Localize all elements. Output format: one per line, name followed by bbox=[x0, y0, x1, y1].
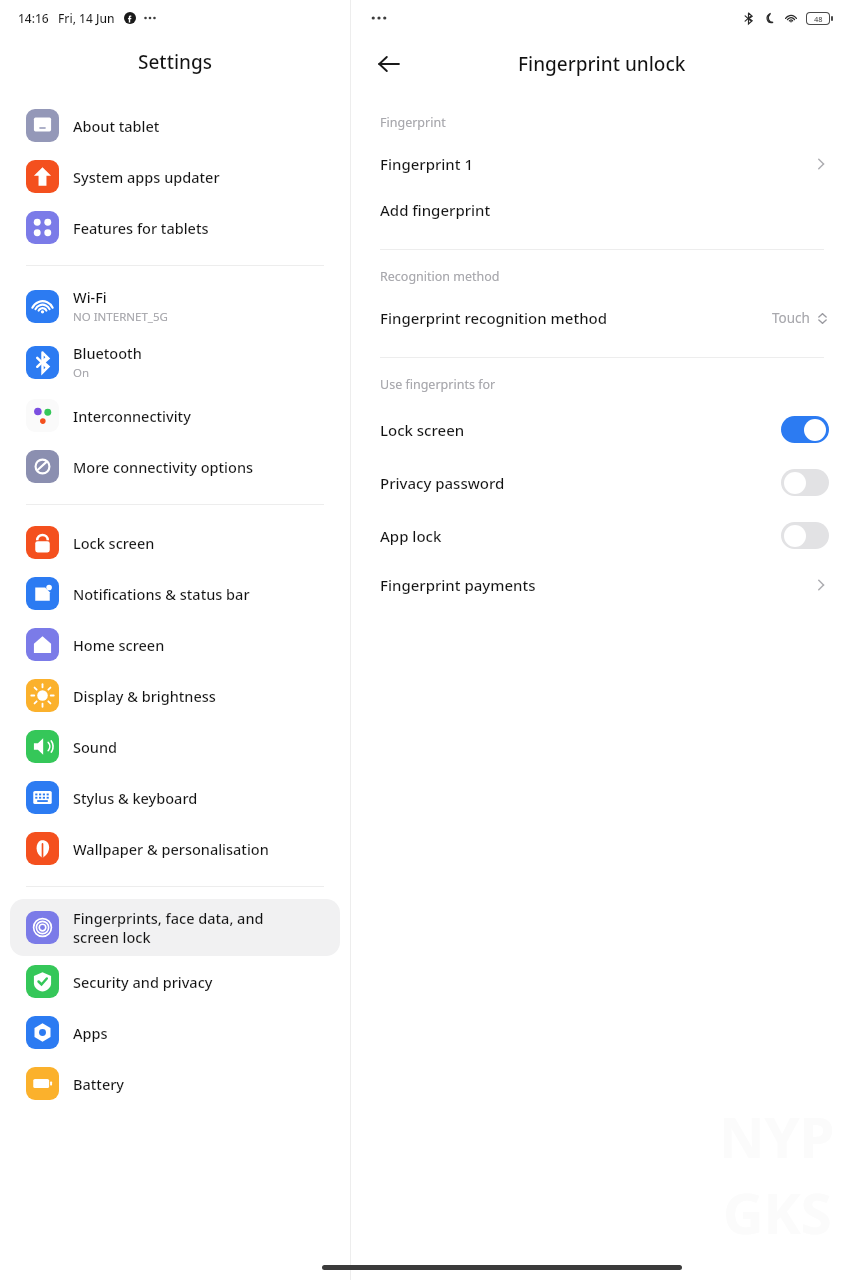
button[interactable]: Wallpaper & personalisation bbox=[0, 823, 350, 874]
staticText: Sound bbox=[73, 737, 118, 757]
button[interactable]: Notifications & status bar bbox=[0, 568, 350, 619]
button[interactable]: Security and privacy bbox=[0, 956, 350, 1007]
staticText: Interconnectivity bbox=[73, 406, 191, 426]
button[interactable]: Fingerprint 1 bbox=[351, 141, 853, 187]
button[interactable]: About tablet bbox=[0, 100, 350, 151]
staticText: 14:16 bbox=[18, 10, 49, 26]
staticText: NO INTERNET_5G bbox=[73, 309, 168, 325]
button[interactable]: More connectivity options bbox=[0, 441, 350, 492]
button[interactable]: Interconnectivity bbox=[0, 390, 350, 441]
staticText: Fingerprint 1 bbox=[380, 154, 473, 174]
button[interactable]: Display & brightness bbox=[0, 670, 350, 721]
staticText: Recognition method bbox=[380, 268, 500, 285]
button[interactable]: Home screen bbox=[0, 619, 350, 670]
button[interactable]: Apps bbox=[0, 1007, 350, 1058]
button[interactable]: On bbox=[781, 416, 829, 443]
staticText: Add fingerprint bbox=[380, 200, 491, 220]
staticText: Battery bbox=[73, 1074, 124, 1094]
staticText: 48 bbox=[814, 14, 823, 24]
staticText: Use fingerprints for bbox=[380, 376, 496, 393]
staticText: App lock bbox=[380, 526, 442, 546]
staticText: On bbox=[73, 365, 90, 381]
button[interactable]: Features for tablets bbox=[0, 202, 350, 253]
staticText: Display & brightness bbox=[73, 686, 216, 706]
staticText: Settings bbox=[138, 49, 212, 75]
button[interactable]: Battery bbox=[0, 1058, 350, 1109]
staticText: Wi-Fi bbox=[73, 287, 107, 307]
staticText: System apps updater bbox=[73, 167, 220, 187]
button[interactable]: Fingerprint recognition method bbox=[351, 295, 853, 341]
staticText: Fingerprint recognition method bbox=[380, 308, 608, 328]
button[interactable]: Stylus & keyboard bbox=[0, 772, 350, 823]
staticText: Bluetooth bbox=[73, 343, 142, 363]
staticText: Lock screen bbox=[73, 533, 155, 553]
staticText: Touch bbox=[772, 309, 810, 327]
button[interactable]: Lock screen bbox=[0, 517, 350, 568]
staticText: Fingerprint payments bbox=[380, 575, 536, 595]
staticText: Stylus & keyboard bbox=[73, 788, 198, 808]
button[interactable]: Lock screen bbox=[351, 403, 853, 456]
button[interactable]: Sound bbox=[0, 721, 350, 772]
staticText: Notifications & status bar bbox=[73, 584, 250, 604]
button[interactable]: Off bbox=[781, 469, 829, 496]
staticText: Security and privacy bbox=[73, 972, 213, 992]
button[interactable]: System apps updater bbox=[0, 151, 350, 202]
staticText: Home screen bbox=[73, 635, 165, 655]
staticText: Fri, 14 Jun bbox=[58, 10, 115, 26]
button[interactable]: Fingerprints, face data, and screen lock bbox=[10, 899, 340, 956]
button[interactable]: App lock bbox=[351, 509, 853, 562]
staticText: Fingerprint unlock bbox=[518, 51, 686, 77]
button[interactable]: Add fingerprint bbox=[351, 187, 853, 233]
staticText: Fingerprints, face data, and screen lock bbox=[73, 908, 264, 947]
staticText: Wallpaper & personalisation bbox=[73, 839, 269, 859]
staticText: Privacy password bbox=[380, 473, 505, 493]
button[interactable]: Privacy password bbox=[351, 456, 853, 509]
button[interactable]: Bluetooth bbox=[0, 334, 350, 390]
staticText: Fingerprint bbox=[380, 114, 446, 131]
staticText: Lock screen bbox=[380, 420, 465, 440]
button[interactable]: Back bbox=[367, 42, 411, 86]
button[interactable]: Wi-Fi bbox=[0, 278, 350, 334]
button[interactable]: Off bbox=[781, 522, 829, 549]
button[interactable]: Fingerprint payments bbox=[351, 562, 853, 608]
staticText: Features for tablets bbox=[73, 218, 209, 238]
staticText: About tablet bbox=[73, 116, 160, 136]
staticText: More connectivity options bbox=[73, 457, 254, 477]
staticText: Apps bbox=[73, 1023, 108, 1043]
